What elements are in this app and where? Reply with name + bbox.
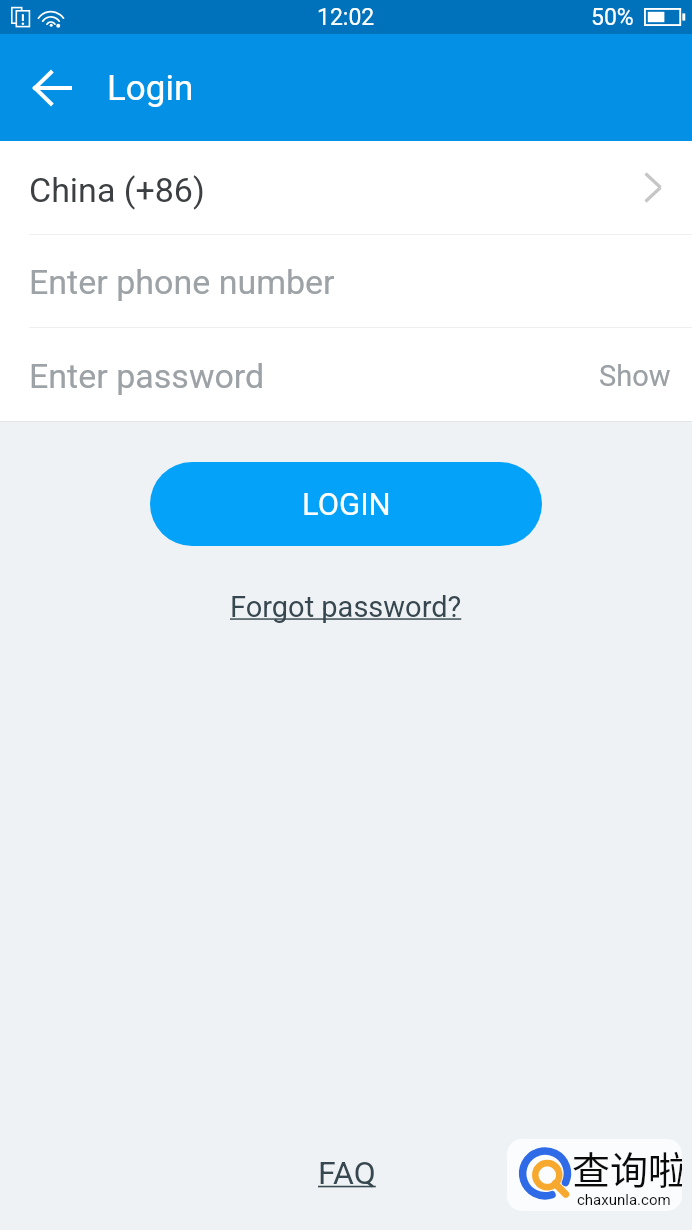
button[interactable]: Back: [0, 34, 105, 141]
staticText: 查询啦: [572, 1140, 682, 1195]
staticText: 50%: [591, 4, 634, 31]
button[interactable]: FAQ: [312, 1154, 382, 1192]
staticText: Login: [107, 68, 194, 109]
staticText: FAQ: [318, 1154, 376, 1192]
staticText: Enter phone number: [29, 262, 335, 302]
staticText: chaxunla.com: [577, 1191, 671, 1209]
button[interactable]: Show: [595, 348, 675, 402]
staticText: Show: [599, 359, 671, 393]
staticText: Enter password: [29, 356, 265, 396]
button[interactable]: Enter phone number: [0, 235, 692, 327]
button[interactable]: Enter password: [0, 328, 692, 421]
button[interactable]: China (+86): [0, 141, 692, 234]
staticText: 12:02: [317, 4, 375, 31]
staticText: LOGIN: [302, 486, 391, 522]
button[interactable]: LOGIN: [150, 462, 542, 546]
staticText: China (+86): [29, 170, 205, 210]
button[interactable]: Forgot password?: [222, 586, 470, 628]
